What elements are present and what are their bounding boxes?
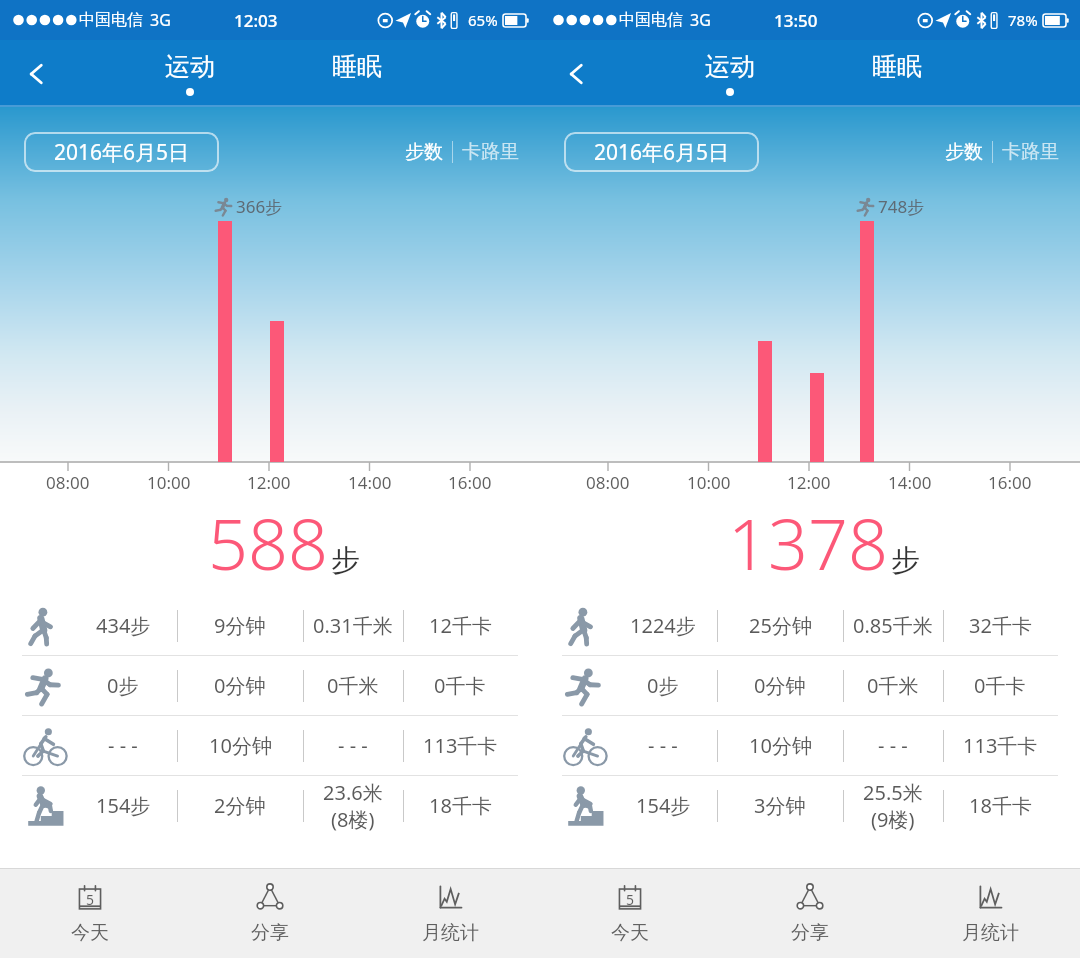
staticText: 08:00 bbox=[46, 471, 90, 494]
staticText: 月统计 bbox=[962, 921, 1019, 945]
staticText: 卡路里 bbox=[1002, 140, 1059, 164]
staticText: 32千卡 bbox=[969, 612, 1032, 639]
staticText: 0步 bbox=[647, 672, 679, 699]
staticText: (9楼) bbox=[871, 806, 915, 833]
staticText: 0千米 bbox=[327, 672, 379, 699]
staticText: - - - bbox=[108, 732, 138, 759]
staticText: 0千卡 bbox=[974, 672, 1026, 699]
staticText: 366步 bbox=[236, 195, 283, 218]
staticText: 今天 bbox=[611, 921, 649, 945]
staticText: 25分钟 bbox=[749, 612, 812, 639]
button[interactable]: 0步 bbox=[22, 656, 518, 715]
staticText: 2016年6月5日 bbox=[54, 138, 190, 167]
staticText: 3G bbox=[690, 9, 711, 31]
staticText: 睡眠 bbox=[872, 51, 922, 82]
staticText: 25.5米 bbox=[863, 779, 923, 806]
staticText: 中国电信 bbox=[619, 10, 683, 30]
staticText: 5 bbox=[86, 890, 95, 909]
staticText: 月统计 bbox=[422, 921, 479, 945]
staticText: - - - bbox=[648, 732, 678, 759]
staticText: 0步 bbox=[107, 672, 139, 699]
staticText: 步 bbox=[331, 542, 360, 579]
staticText: 14:00 bbox=[348, 471, 392, 494]
button[interactable]: 5 bbox=[0, 869, 180, 958]
staticText: 78% bbox=[1008, 10, 1038, 30]
staticText: 18千卡 bbox=[429, 792, 492, 819]
button[interactable]: - - - bbox=[562, 716, 1058, 775]
button[interactable]: Back bbox=[14, 52, 58, 96]
staticText: 10分钟 bbox=[749, 732, 812, 759]
staticText: 434步 bbox=[96, 612, 151, 639]
staticText: 10分钟 bbox=[209, 732, 272, 759]
staticText: 中国电信 bbox=[79, 10, 143, 30]
staticText: 0千米 bbox=[867, 672, 919, 699]
staticText: 卡路里 bbox=[462, 140, 519, 164]
staticText: 154步 bbox=[96, 792, 151, 819]
staticText: 3分钟 bbox=[754, 792, 806, 819]
staticText: 10:00 bbox=[687, 471, 731, 494]
button[interactable]: 运动 bbox=[680, 40, 780, 107]
staticText: 588 bbox=[208, 495, 328, 590]
staticText: 0.31千米 bbox=[313, 612, 393, 639]
staticText: 65% bbox=[468, 10, 498, 30]
staticText: 5 bbox=[626, 890, 635, 909]
staticText: 18千卡 bbox=[969, 792, 1032, 819]
button[interactable]: 1224步 bbox=[562, 596, 1058, 655]
button[interactable]: Back bbox=[554, 52, 598, 96]
button[interactable]: - - - bbox=[22, 716, 518, 775]
button[interactable]: 步数 bbox=[405, 136, 443, 168]
staticText: 2016年6月5日 bbox=[594, 138, 730, 167]
button[interactable]: 分享 bbox=[180, 869, 360, 958]
staticText: 12:03 bbox=[234, 9, 278, 32]
staticText: 步数 bbox=[945, 140, 983, 164]
staticText: 步 bbox=[891, 542, 920, 579]
staticText: 分享 bbox=[791, 921, 829, 945]
button[interactable]: 卡路里 bbox=[462, 136, 519, 168]
staticText: 12千卡 bbox=[429, 612, 492, 639]
button[interactable]: 卡路里 bbox=[1002, 136, 1059, 168]
staticText: 10:00 bbox=[147, 471, 191, 494]
button[interactable]: 月统计 bbox=[360, 869, 540, 958]
staticText: 12:00 bbox=[787, 471, 831, 494]
button[interactable]: 步数 bbox=[945, 136, 983, 168]
staticText: 12:00 bbox=[247, 471, 291, 494]
staticText: 0分钟 bbox=[214, 672, 266, 699]
staticText: 748步 bbox=[878, 195, 925, 218]
button[interactable]: 154步 bbox=[562, 776, 1058, 835]
staticText: 16:00 bbox=[448, 471, 492, 494]
staticText: (8楼) bbox=[331, 806, 375, 833]
button[interactable]: 5 bbox=[540, 869, 720, 958]
button[interactable]: 睡眠 bbox=[847, 40, 947, 107]
staticText: 今天 bbox=[71, 921, 109, 945]
staticText: 3G bbox=[150, 9, 171, 31]
button[interactable]: 434步 bbox=[22, 596, 518, 655]
button[interactable]: 2016年6月5日 bbox=[564, 132, 759, 172]
staticText: 9分钟 bbox=[214, 612, 266, 639]
staticText: 0.85千米 bbox=[853, 612, 933, 639]
button[interactable]: 月统计 bbox=[900, 869, 1080, 958]
staticText: 2分钟 bbox=[214, 792, 266, 819]
staticText: 113千卡 bbox=[423, 732, 498, 759]
staticText: 1224步 bbox=[630, 612, 696, 639]
staticText: 步数 bbox=[405, 140, 443, 164]
button[interactable]: 分享 bbox=[720, 869, 900, 958]
staticText: 16:00 bbox=[988, 471, 1032, 494]
staticText: 23.6米 bbox=[323, 779, 383, 806]
button[interactable]: 2016年6月5日 bbox=[24, 132, 219, 172]
button[interactable]: 154步 bbox=[22, 776, 518, 835]
staticText: 13:50 bbox=[774, 9, 818, 32]
staticText: 08:00 bbox=[586, 471, 630, 494]
staticText: 0分钟 bbox=[754, 672, 806, 699]
staticText: 运动 bbox=[165, 51, 215, 82]
staticText: 睡眠 bbox=[332, 51, 382, 82]
staticText: - - - bbox=[338, 732, 368, 759]
button[interactable]: 睡眠 bbox=[307, 40, 407, 107]
staticText: 0千卡 bbox=[434, 672, 486, 699]
staticText: 154步 bbox=[636, 792, 691, 819]
staticText: 运动 bbox=[705, 51, 755, 82]
staticText: 分享 bbox=[251, 921, 289, 945]
staticText: 14:00 bbox=[888, 471, 932, 494]
button[interactable]: 运动 bbox=[140, 40, 240, 107]
button[interactable]: 0步 bbox=[562, 656, 1058, 715]
staticText: 1378 bbox=[728, 495, 888, 590]
